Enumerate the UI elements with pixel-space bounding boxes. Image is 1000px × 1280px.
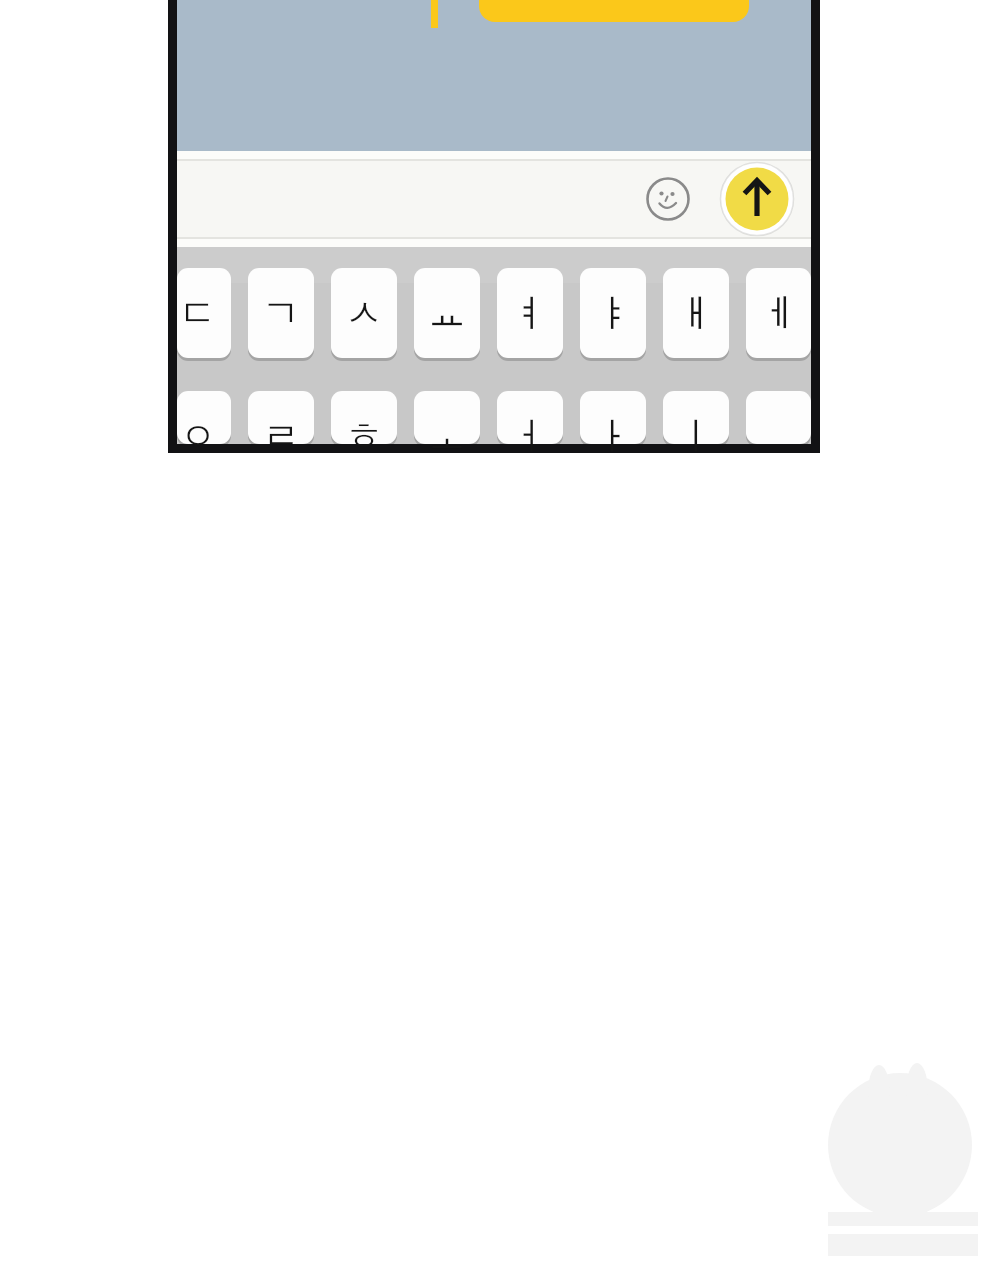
staticText: ㅐ xyxy=(677,289,715,337)
button[interactable]: Key ㅑ xyxy=(580,268,646,358)
button[interactable]: Key ㅗ xyxy=(414,391,480,444)
staticText: ㅑ xyxy=(594,289,632,337)
staticText: ㅇ xyxy=(179,412,217,460)
button[interactable]: Message input xyxy=(177,159,640,239)
button[interactable]: Key ㄱ xyxy=(248,268,314,358)
staticText: ㅏ xyxy=(594,412,632,460)
button[interactable]: Key ㅏ xyxy=(580,391,646,444)
staticText: ㅣ xyxy=(677,412,715,460)
button[interactable]: Key ㅛ xyxy=(414,268,480,358)
staticText: ㅗ xyxy=(428,412,466,460)
button[interactable]: Key ㅎ xyxy=(331,391,397,444)
button[interactable]: Key ㅕ xyxy=(497,268,563,358)
button[interactable]: Key ㅐ xyxy=(663,268,729,358)
button[interactable]: Emoji xyxy=(642,173,694,225)
button[interactable]: Key ㅓ xyxy=(497,391,563,444)
staticText: ㅔ xyxy=(760,289,798,337)
button[interactable]: Key ㅔ xyxy=(746,268,812,358)
button[interactable]: Key ㄹ xyxy=(248,391,314,444)
staticText: ㄷ xyxy=(179,289,217,337)
staticText: ㅓ xyxy=(511,412,549,460)
staticText: ㅕ xyxy=(511,289,549,337)
button[interactable]: Key ㄷ xyxy=(177,268,231,358)
button[interactable]: Key ㅅ xyxy=(331,268,397,358)
staticText: ㅛ xyxy=(428,289,466,337)
button[interactable]: Send message xyxy=(723,165,791,233)
staticText: ㄹ xyxy=(262,412,300,460)
staticText: ㅅ xyxy=(345,289,383,337)
staticText: ㅎ xyxy=(345,412,383,460)
button[interactable]: Key ㅇ xyxy=(177,391,231,444)
button[interactable]: Key ㅣ xyxy=(663,391,729,444)
staticText: ㄱ xyxy=(262,289,300,337)
